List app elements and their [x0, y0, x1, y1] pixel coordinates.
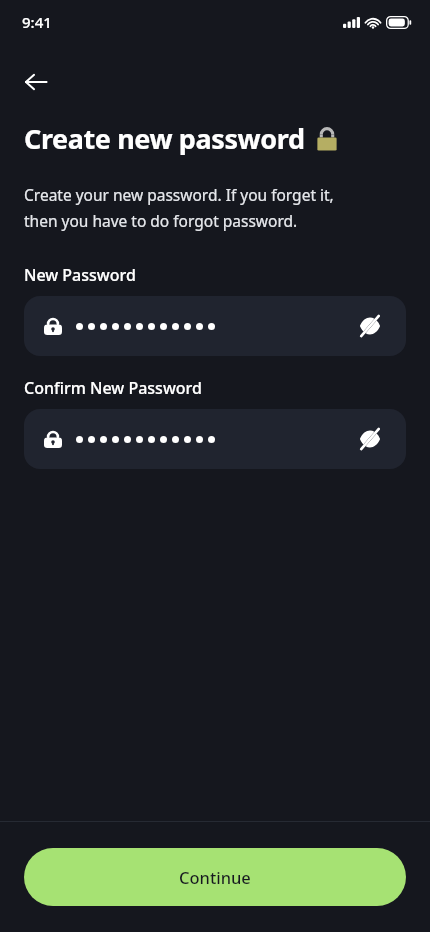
staticText: Continue [179, 866, 251, 888]
button[interactable]: Show password [354, 423, 386, 455]
staticText: Create your new password. If you forget … [24, 184, 334, 232]
staticText: 9:41 [22, 12, 52, 32]
button[interactable]: Continue [24, 848, 406, 906]
button[interactable]: Show password [354, 310, 386, 342]
staticText: New Password [24, 264, 136, 286]
button[interactable]: Show password [24, 296, 406, 356]
staticText: Create new password [24, 120, 305, 157]
staticText: Confirm New Password [24, 377, 202, 399]
button[interactable]: Back [12, 58, 60, 106]
button[interactable]: Show password [24, 409, 406, 469]
